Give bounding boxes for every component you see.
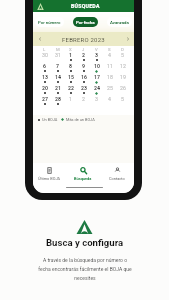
button[interactable]: 5 [116,97,129,108]
staticText: 13 [42,74,48,80]
staticText: A través de la búsqueda por número o fec… [38,257,132,282]
button[interactable]: 2 [77,97,90,108]
staticText: 4 [108,96,111,102]
staticText: 27 [42,96,48,102]
button[interactable]: Mes siguiente [121,32,134,46]
staticText: 23 [81,85,87,91]
staticText: Contacto [109,176,125,181]
staticText: 15 [68,74,74,80]
staticText: 17 [94,74,100,80]
staticText: S [108,47,111,52]
staticText: Búsqueda [74,176,92,181]
staticText: D [121,47,124,52]
button[interactable]: Mes anterior [33,32,46,46]
button[interactable]: 14 [51,75,64,86]
button[interactable]: 2 [77,53,90,64]
button[interactable]: 10 [90,64,103,75]
staticText: Avanzada [110,20,129,25]
staticText: 9 [82,63,85,69]
staticText: 25 [107,85,113,91]
staticText: Más de un BOJA [66,117,95,122]
staticText: 31 [55,52,61,58]
staticText: BÚSQUEDA [71,3,100,9]
staticText: 10 [94,63,100,69]
staticText: 14 [55,74,61,80]
button[interactable]: 12 [116,64,129,75]
button[interactable]: 24 [90,86,103,97]
staticText: 7 [56,63,59,69]
button[interactable]: 23 [77,86,90,97]
staticText: 21 [55,85,61,91]
button[interactable]: 8 [64,64,77,75]
staticText: 26 [120,85,126,91]
staticText: 12 [120,63,126,69]
button[interactable]: 5 [116,53,129,64]
button[interactable]: 28 [51,97,64,108]
staticText: FEBRERO 2023 [62,36,105,43]
button[interactable]: 15 [64,75,77,86]
staticText: 5 [121,52,124,58]
button[interactable]: Por número [35,17,64,27]
button[interactable]: Búsqueda [66,163,100,184]
button[interactable]: 31 [51,53,64,64]
staticText: Por número [38,20,61,25]
button[interactable]: 11 [103,64,116,75]
staticText: Por fecha [76,20,95,25]
staticText: 3 [95,52,98,58]
button[interactable]: Último BOJA [33,163,66,184]
button[interactable]: 4 [103,97,116,108]
other: Logotipo Junta de Andalucía [76,220,93,234]
button[interactable]: 17 [90,75,103,86]
staticText: 28 [55,96,61,102]
staticText: 19 [120,74,126,80]
staticText: Un BOJA [42,117,58,122]
staticText: 5 [121,96,124,102]
button[interactable]: Contacto [100,163,134,184]
button[interactable]: 1 [64,53,77,64]
other: Junta de Andalucía [37,3,44,10]
staticText: 20 [42,85,48,91]
staticText: 6 [43,63,46,69]
staticText: 4 [108,52,111,58]
button[interactable]: 16 [77,75,90,86]
staticText: 30 [42,52,48,58]
staticText: X [69,47,72,52]
button[interactable]: 6 [38,64,51,75]
button[interactable]: 3 [90,97,103,108]
button[interactable]: 19 [116,75,129,86]
button[interactable]: 18 [103,75,116,86]
button[interactable]: 20 [38,86,51,97]
staticText: 11 [107,63,113,69]
button[interactable]: 13 [38,75,51,86]
staticText: 2 [82,96,85,102]
staticText: 8 [69,63,72,69]
staticText: 16 [81,74,87,80]
button[interactable]: Avanzada [107,17,132,27]
staticText: V [95,47,98,52]
button[interactable]: 9 [77,64,90,75]
staticText: 1 [69,52,72,58]
staticText: Último BOJA [38,176,61,181]
button[interactable]: 25 [103,86,116,97]
button[interactable]: 21 [51,86,64,97]
staticText: 3 [95,96,98,102]
staticText: M [56,47,60,52]
button[interactable]: 30 [38,53,51,64]
staticText: 22 [68,85,74,91]
button[interactable]: 26 [116,86,129,97]
staticText: 24 [94,85,100,91]
button[interactable]: 7 [51,64,64,75]
button[interactable]: 1 [64,97,77,108]
button[interactable]: 22 [64,86,77,97]
button[interactable]: 27 [38,97,51,108]
staticText: 2 [82,52,85,58]
staticText: 18 [107,74,113,80]
button[interactable]: 4 [103,53,116,64]
staticText: L [43,47,46,52]
staticText: 1 [69,96,72,102]
button[interactable]: Por fecha [73,17,98,27]
staticText: Busca y configura [46,237,124,248]
button[interactable]: 3 [90,53,103,64]
staticText: J [82,47,85,52]
